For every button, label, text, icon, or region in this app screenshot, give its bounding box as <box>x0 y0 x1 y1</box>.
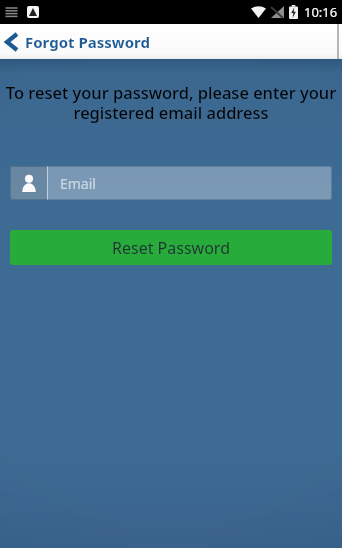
staticText: 10:16 <box>304 3 338 21</box>
staticText: Reset Password <box>112 237 230 259</box>
staticText: To reset your password, please enter you… <box>0 81 342 124</box>
button[interactable]: Email <box>10 166 332 200</box>
button[interactable]: Reset Password <box>10 230 332 265</box>
staticText: Forgot Password <box>25 32 150 52</box>
staticText: Email <box>60 174 96 193</box>
button[interactable]: Forgot Password <box>7 32 150 52</box>
